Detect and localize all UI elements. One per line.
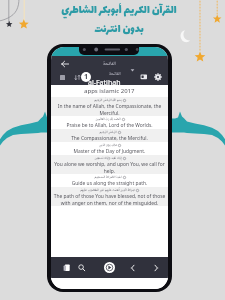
staticText: إِيَّاكَ نَعْبُدُ وَإِيَّاكَ نَسْتَعِينُ [94,155,122,161]
staticText: The path of those You have blessed, not … [52,193,167,206]
button[interactable]: صِرَاطَ الَّذِينَ أَنْعَمْتَ عَلَيْهِمْ … [51,187,168,206]
button[interactable]: Back [58,57,71,70]
staticText: apps islamic 2017 [84,87,135,95]
button[interactable]: اهْدِنَا الصِّرَاطَ الْمُسْتَقِيمَ [51,174,168,187]
button[interactable]: Previous [126,261,140,275]
staticText: الفاتحة [103,60,116,69]
staticText: الْحَمْدُ لِلَّهِ رَبِّ الْعَالَمِينَ [95,116,121,122]
staticText: Praise be to Allah, Lord of the Worlds. [52,122,167,129]
staticText: Master of the Day of Judgment. [52,148,167,155]
button[interactable]: بِسْمِ اللَّهِ الرَّحْمَٰنِ الرَّحِيمِ [51,97,168,116]
staticText: اهْدِنَا الصِّرَاطَ الْمُسْتَقِيمَ [94,174,122,180]
staticText: 1 [84,72,89,82]
staticText: مَالِكِ يَوْمِ الدِّينِ [99,142,117,148]
staticText: بدون انترنت [94,20,144,39]
button[interactable]: الرَّحْمَٰنِ الرَّحِيمِ [51,129,168,142]
staticText: You alone we worship, and upon You, we c… [52,161,167,174]
staticText: بِسْمِ اللَّهِ الرَّحْمَٰنِ الرَّحِيمِ [94,97,122,103]
staticText: صِرَاطَ الَّذِينَ أَنْعَمْتَ عَلَيْهِمْ … [80,187,135,193]
staticText: al-Fatihah [88,78,121,88]
button[interactable]: مَالِكِ يَوْمِ الدِّينِ [51,142,168,155]
staticText: In the name of Allah, the Compassionate,… [52,103,167,116]
button[interactable]: Pages [60,261,74,275]
staticText: القرآن الكريم أبوبكر الشاطري [61,1,177,20]
button[interactable]: الفاتحة [86,70,121,88]
button[interactable]: Play [104,262,115,273]
button[interactable]: الْحَمْدُ لِلَّهِ رَبِّ الْعَالَمِينَ [51,116,168,129]
button[interactable]: إِيَّاكَ نَعْبُدُ وَإِيَّاكَ نَسْتَعِينُ [51,155,168,174]
button[interactable]: 1 [81,72,91,82]
button[interactable]: Search [75,261,89,275]
staticText: الفاتحة [109,70,121,78]
button[interactable]: Sort [71,71,83,83]
button[interactable]: Bookmark [56,71,68,83]
staticText: الرَّحْمَٰنِ الرَّحِيمِ [99,129,117,135]
button[interactable]: Translation [138,71,150,83]
button[interactable]: Next [149,261,163,275]
staticText: The Compassionate, the Merciful. [52,135,167,142]
staticText: Guide us along the straight path. [52,180,167,187]
button[interactable]: Settings [152,71,164,83]
